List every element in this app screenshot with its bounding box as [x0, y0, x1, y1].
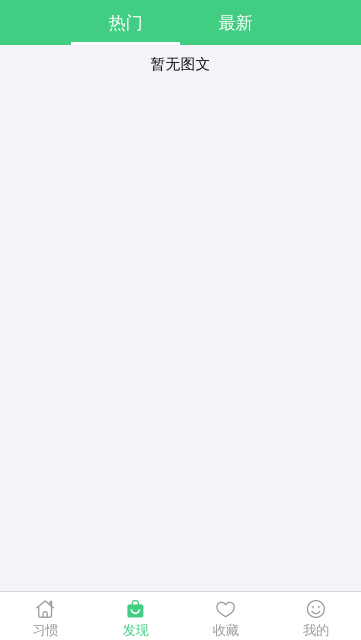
staticText: 我的 [303, 622, 329, 638]
button[interactable]: 习惯 [0, 591, 90, 640]
button[interactable]: 我的 [271, 591, 361, 640]
button[interactable]: 收藏 [180, 591, 271, 640]
staticText: 习惯 [32, 622, 58, 638]
button[interactable]: 热门 [70, 1, 180, 45]
button[interactable]: 最新 [180, 1, 290, 45]
staticText: 最新 [218, 12, 252, 34]
staticText: 暂无图文 [150, 55, 210, 73]
button[interactable]: 发现 [90, 591, 180, 640]
staticText: 热门 [108, 12, 142, 34]
staticText: 收藏 [213, 622, 239, 638]
staticText: 发现 [122, 622, 148, 638]
